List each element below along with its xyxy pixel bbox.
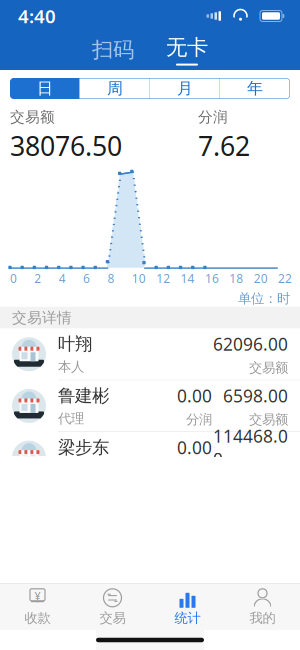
staticText: 交易额	[249, 360, 288, 376]
staticText: 交易额	[249, 411, 288, 428]
staticText: 0.00	[177, 591, 212, 614]
button[interactable]: 梁步东	[0, 432, 300, 484]
staticText: 4:40	[18, 4, 56, 28]
staticText: 114468.00	[213, 424, 288, 470]
staticText: 交易额	[10, 108, 55, 126]
staticText: 梁步东	[58, 437, 109, 458]
staticText: 62096.00	[213, 332, 288, 355]
button[interactable]: 扫码	[89, 33, 137, 67]
staticText: 10	[132, 270, 146, 286]
staticText: 0.00	[177, 436, 212, 459]
staticText: ¥	[34, 589, 40, 603]
staticText: 无卡	[166, 34, 208, 61]
staticText: 扫码	[92, 37, 134, 63]
staticText: 周	[107, 79, 123, 98]
staticText: 我的	[249, 610, 275, 626]
staticText: 分润	[198, 108, 228, 126]
button[interactable]: 无卡	[163, 33, 211, 67]
staticText: 16	[205, 270, 219, 286]
button[interactable]: 陈立	[0, 639, 300, 650]
button[interactable]: 叶翔	[0, 329, 300, 380]
staticText: 6	[83, 270, 90, 286]
staticText: 0.00	[253, 591, 288, 614]
staticText: 交易额	[249, 618, 288, 634]
staticText: 鲁建彬	[58, 385, 109, 406]
staticText: 18	[229, 270, 243, 286]
staticText: 2	[34, 270, 41, 286]
staticText: 20	[254, 270, 268, 286]
button[interactable]: 年	[220, 78, 290, 99]
button[interactable]: 邬智绮	[0, 587, 300, 639]
staticText: 统计	[174, 610, 200, 626]
staticText: 年	[247, 79, 263, 98]
staticText: 邬智绮	[58, 592, 109, 613]
staticText: 交易详情	[12, 309, 72, 327]
staticText: 叶翔	[58, 333, 92, 355]
staticText: 收款	[24, 610, 50, 626]
staticText: 12	[156, 270, 170, 286]
button[interactable]: 我的	[225, 584, 300, 630]
staticText: 日	[37, 79, 53, 98]
button[interactable]: 胡帆	[0, 535, 300, 587]
staticText: 38076.50	[10, 128, 122, 163]
staticText: 6598.00	[223, 384, 288, 407]
staticText: 14	[180, 270, 194, 286]
staticText: 22	[278, 270, 292, 286]
staticText: 8	[107, 270, 114, 286]
staticText: 0.00	[177, 643, 212, 650]
button[interactable]: 月	[150, 78, 220, 99]
staticText: 单位：时	[238, 290, 290, 307]
button[interactable]: 周	[80, 78, 150, 99]
staticText: 代理	[58, 617, 84, 634]
staticText: 分润	[186, 618, 212, 634]
button[interactable]: 鲁建彬	[0, 380, 300, 432]
button[interactable]: 交易	[75, 584, 150, 630]
staticText: 月	[177, 79, 193, 98]
staticText: 0	[10, 270, 17, 286]
staticText: 本人	[58, 359, 84, 375]
staticText: 交易	[99, 610, 125, 626]
staticText: 7.62	[198, 128, 250, 163]
staticText: 0.00	[177, 384, 212, 407]
staticText: 代理	[58, 410, 84, 427]
staticText: 分润	[186, 411, 212, 428]
button[interactable]: ¥	[0, 584, 75, 630]
staticText: 4	[59, 270, 66, 286]
button[interactable]: 统计	[150, 584, 225, 630]
button[interactable]: 日	[10, 78, 80, 99]
